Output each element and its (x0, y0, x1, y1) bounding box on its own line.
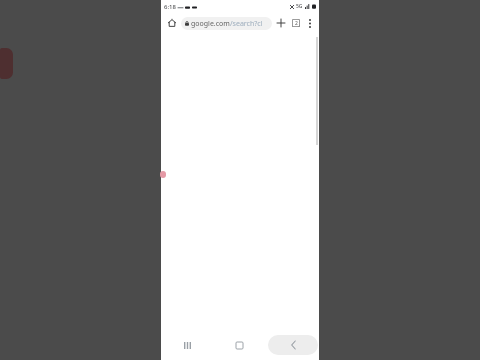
button[interactable]: New tab (274, 16, 288, 30)
button[interactable]: Recent apps (161, 330, 213, 360)
staticText: 2 (295, 20, 298, 27)
button[interactable]: Home (213, 330, 266, 360)
button[interactable]: Search or type web address (181, 17, 272, 30)
button[interactable]: Back (266, 330, 319, 360)
button[interactable]: Home (164, 15, 180, 31)
staticText: 5G (296, 3, 303, 10)
staticText: 6:18 (164, 3, 176, 11)
button[interactable]: Switch tabs, 2 open (289, 16, 303, 30)
staticText: google.com (191, 19, 230, 29)
button[interactable]: More options (304, 17, 316, 29)
staticText: /search?cl (230, 19, 263, 29)
